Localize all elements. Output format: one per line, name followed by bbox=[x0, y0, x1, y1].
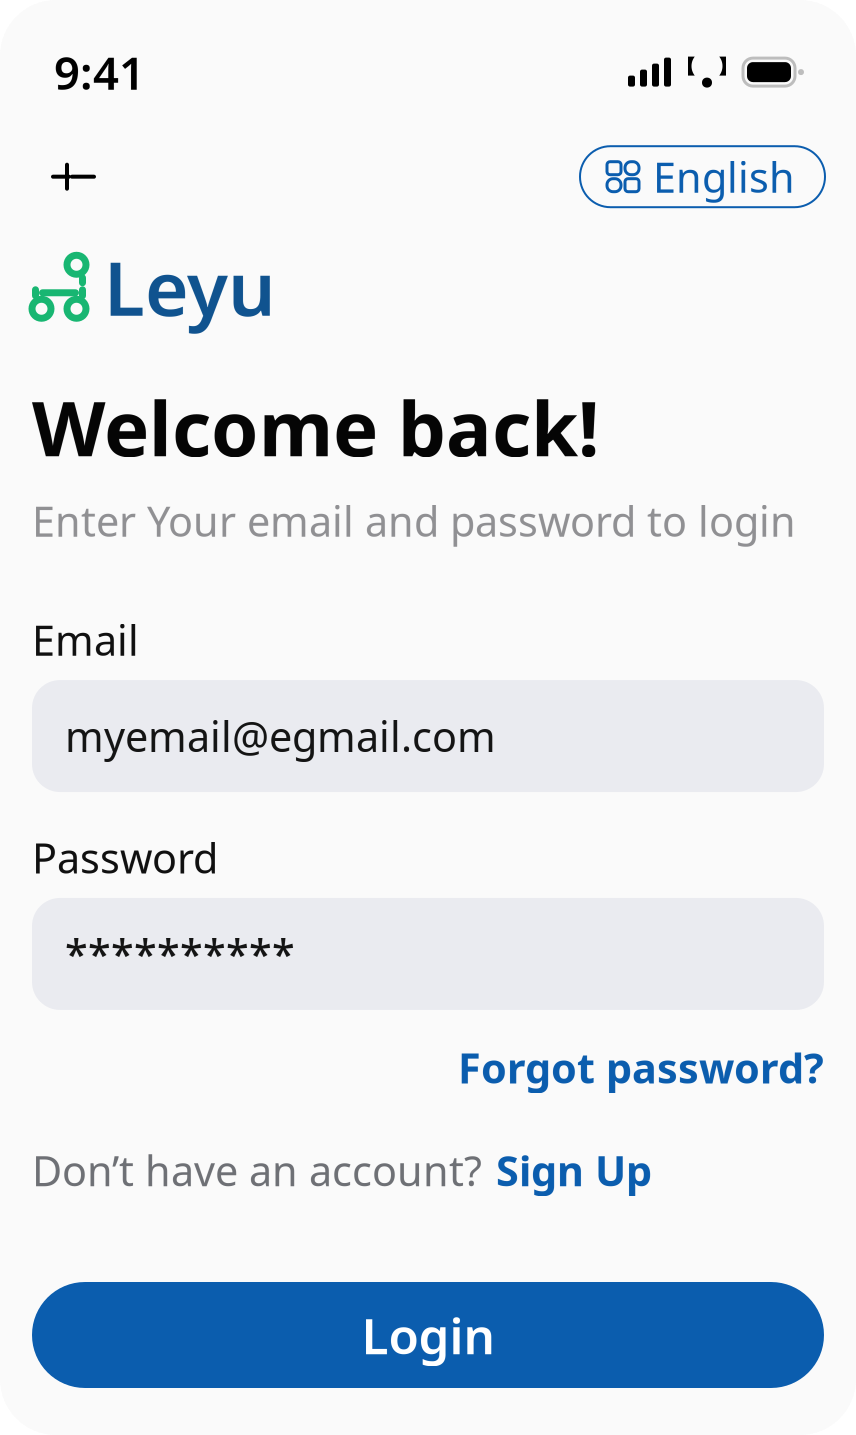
button[interactable]: ********** bbox=[32, 898, 824, 1010]
button[interactable]: myemail@egmail.com bbox=[32, 680, 824, 792]
staticText: Email bbox=[32, 612, 139, 667]
staticText: Leyu bbox=[104, 237, 276, 336]
staticText: Password bbox=[32, 830, 218, 885]
staticText: ********** bbox=[65, 926, 295, 981]
button[interactable]: Forgot password? bbox=[458, 1040, 824, 1095]
staticText: Enter Your email and password to login bbox=[32, 493, 796, 548]
staticText: Forgot password? bbox=[458, 1040, 824, 1095]
staticText: Don’t have an account? bbox=[32, 1143, 482, 1198]
staticText: 9:41 bbox=[54, 42, 145, 102]
button[interactable]: Sign Up bbox=[496, 1143, 652, 1198]
staticText: Sign Up bbox=[496, 1143, 652, 1198]
staticText: Welcome back! bbox=[32, 376, 599, 477]
button[interactable]: English bbox=[580, 146, 825, 207]
button[interactable]: Login bbox=[32, 1282, 824, 1388]
button[interactable]: Back bbox=[48, 157, 100, 197]
staticText: myemail@egmail.com bbox=[65, 709, 496, 763]
staticText: Login bbox=[361, 1302, 494, 1368]
staticText: English bbox=[653, 149, 795, 204]
